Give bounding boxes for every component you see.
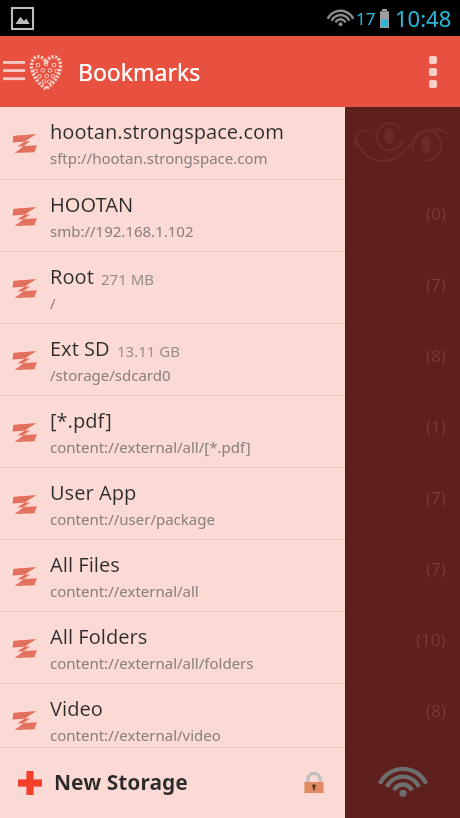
staticText: (10): [416, 628, 446, 651]
staticText: [*.pdf]: [50, 407, 112, 434]
staticText: Ext SD: [50, 335, 110, 362]
staticText: User App: [50, 479, 137, 506]
staticText: New Storage: [54, 768, 188, 797]
staticText: /storage/sdcard0: [50, 365, 171, 385]
button[interactable]: Locked: [297, 766, 331, 800]
staticText: All Folders: [50, 623, 148, 650]
button[interactable]: New Storage: [0, 747, 345, 818]
button[interactable]: Network: [345, 747, 460, 818]
staticText: content://external/all/folders: [50, 653, 254, 673]
staticText: content://user/package: [50, 509, 215, 529]
staticText: 271 MB: [101, 269, 154, 289]
button[interactable]: All Folders: [0, 612, 345, 683]
staticText: content://external/video: [50, 725, 221, 745]
staticText: (8): [426, 699, 446, 722]
button[interactable]: Bookmarks logo: [23, 49, 69, 95]
button[interactable]: Open navigation drawer: [0, 50, 36, 94]
staticText: (8): [426, 344, 446, 367]
staticText: /: [50, 293, 56, 313]
staticText: 13.11 GB: [117, 341, 180, 361]
staticText: content://external/all: [50, 581, 199, 601]
staticText: (1): [426, 415, 446, 438]
staticText: smb://192.168.1.102: [50, 221, 194, 241]
staticText: HOOTAN: [50, 191, 134, 218]
button[interactable]: All Files: [0, 540, 345, 611]
staticText: 17: [356, 7, 376, 30]
staticText: sftp://hootan.strongspace.com: [50, 148, 268, 168]
button[interactable]: User App: [0, 468, 345, 539]
button[interactable]: Video: [0, 684, 345, 755]
staticText: Video: [50, 695, 103, 722]
button[interactable]: hootan.strongspace.com: [0, 107, 345, 179]
button[interactable]: More options: [406, 45, 460, 99]
staticText: hootan.strongspace.com: [50, 118, 284, 145]
button[interactable]: Root: [0, 252, 345, 323]
staticText: All Files: [50, 551, 120, 578]
button[interactable]: [*.pdf]: [0, 396, 345, 467]
staticText: (7): [426, 273, 446, 296]
button[interactable]: Ext SD: [0, 324, 345, 395]
staticText: (7): [426, 486, 446, 509]
staticText: Root: [50, 263, 94, 290]
staticText: 10:48: [395, 3, 452, 33]
button[interactable]: HOOTAN: [0, 180, 345, 251]
staticText: Bookmarks: [78, 56, 201, 87]
staticText: (0): [426, 202, 446, 225]
staticText: content://external/all/[*.pdf]: [50, 437, 251, 457]
staticText: (7): [426, 557, 446, 580]
